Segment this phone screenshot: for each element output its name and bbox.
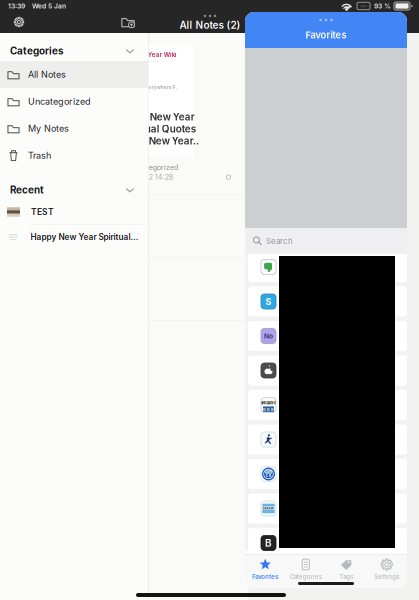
staticText: y New Year (142, 111, 195, 123)
staticText: AM (265, 469, 272, 475)
staticText: Happy New Year Spiritual… (30, 232, 138, 242)
button[interactable]: Favorite app (248, 528, 407, 558)
staticText: 13:39 (8, 2, 25, 10)
staticText: - New Year… (142, 135, 202, 147)
button[interactable]: Favorites (245, 553, 285, 581)
button[interactable]: Settings (366, 553, 407, 581)
button[interactable]: Tags (326, 553, 366, 581)
staticText: My Notes (28, 123, 69, 134)
staticText: Wed 5 Jan (32, 2, 66, 10)
button[interactable]: Trash (0, 142, 148, 169)
staticText: Favorites (305, 29, 346, 41)
button[interactable]: All Notes (0, 61, 148, 88)
staticText: All Notes (2) (179, 19, 240, 31)
staticText: Categories (10, 45, 64, 57)
staticText: Recent (10, 184, 44, 196)
staticText: Search (266, 236, 293, 246)
staticText: Trash (28, 150, 51, 161)
staticText: amazon (260, 400, 276, 405)
staticText: EX (265, 473, 271, 478)
button[interactable]: Favorite app (248, 321, 407, 351)
button[interactable]: My Notes (0, 115, 148, 142)
staticText: S (265, 296, 271, 307)
button[interactable]: Happy New Year Spiritual… (0, 225, 148, 250)
button[interactable]: Uncategorized (0, 88, 148, 115)
staticText: TEST (31, 207, 54, 217)
button[interactable]: Favorite app (248, 355, 407, 385)
staticText: ··· (360, 2, 366, 10)
button[interactable]: New folder (120, 14, 136, 30)
staticText: NAPA (263, 506, 274, 510)
staticText: B (265, 537, 272, 549)
staticText: No (264, 332, 273, 340)
button[interactable]: Categories (285, 553, 326, 581)
staticText: All Notes (28, 69, 66, 80)
button[interactable]: Settings (11, 14, 27, 30)
button[interactable]: Collapse Categories (121, 42, 139, 60)
button[interactable]: Favorite app (248, 390, 407, 420)
staticText: 93 % (374, 2, 391, 10)
staticText: ≡≡≡ (262, 407, 274, 412)
button[interactable]: Favorite app (248, 424, 407, 454)
staticText: Tags (339, 573, 353, 580)
staticText: Uncategorized (28, 96, 91, 107)
staticText: Settings (374, 573, 399, 580)
staticText: tual Quotes (142, 123, 196, 135)
staticText: 2 14:28 (149, 173, 173, 181)
staticText: Categories (290, 573, 322, 580)
button[interactable]: Favorite app (248, 252, 407, 282)
staticText: Favorites (252, 573, 278, 580)
button[interactable]: Favorite app (248, 459, 407, 489)
button[interactable]: TEST (0, 200, 148, 224)
staticText: v Year Wiki (142, 51, 177, 58)
button[interactable]: Collapse Recent (121, 181, 139, 199)
button[interactable]: Favorite app (248, 493, 407, 523)
button[interactable]: Favorite app (248, 286, 407, 316)
staticText: egorized (149, 163, 178, 172)
staticText: Evrywhere F. (146, 84, 177, 90)
